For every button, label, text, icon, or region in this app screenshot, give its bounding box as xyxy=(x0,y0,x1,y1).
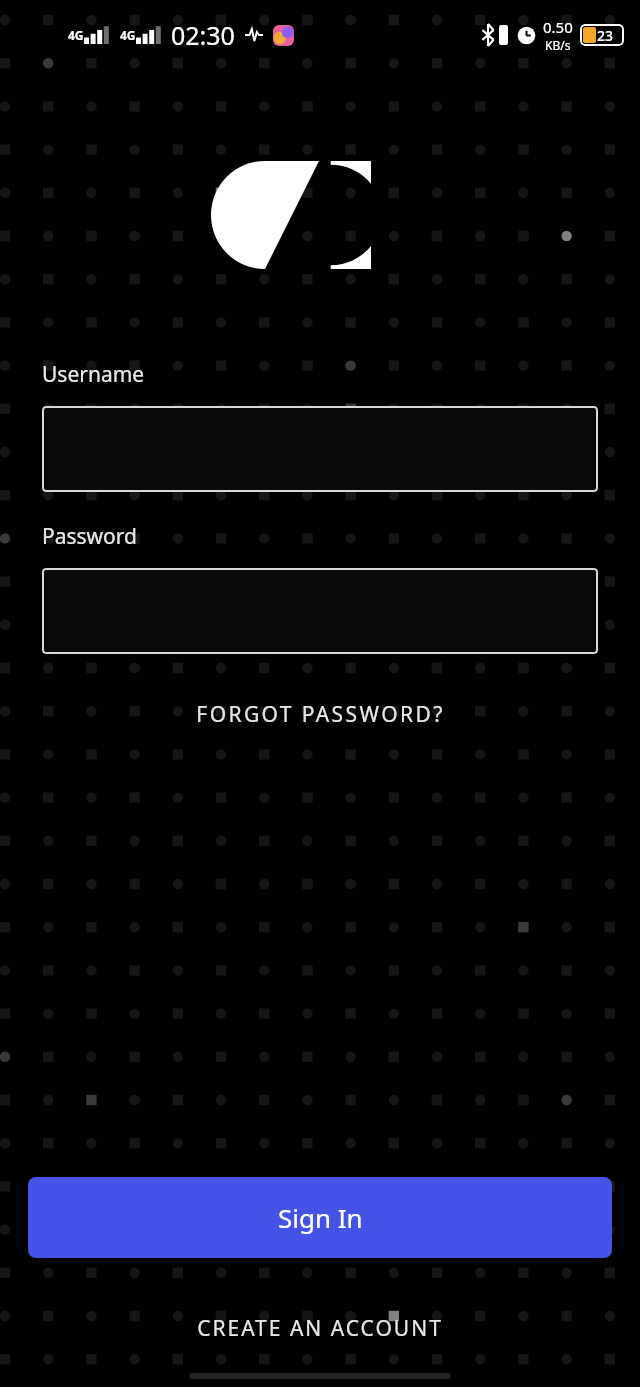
staticText: KB/s xyxy=(545,37,571,53)
staticText: 0.50 xyxy=(543,17,573,37)
staticText: 23 xyxy=(597,26,614,45)
staticText: 4G xyxy=(120,27,136,43)
staticText: 02:30 xyxy=(171,18,235,52)
button[interactable] xyxy=(42,568,598,654)
staticText: Sign In xyxy=(278,1200,363,1235)
staticText: 4G xyxy=(68,27,84,43)
staticText: Password xyxy=(42,522,137,551)
staticText: CREATE AN ACCOUNT xyxy=(197,1314,443,1343)
button[interactable]: CREATE AN ACCOUNT xyxy=(0,1314,640,1343)
staticText: Username xyxy=(42,360,145,389)
staticText: FORGOT PASSWORD? xyxy=(196,700,445,729)
button[interactable]: Sign In xyxy=(28,1177,612,1258)
button[interactable]: FORGOT PASSWORD? xyxy=(0,700,640,729)
button[interactable] xyxy=(42,406,598,492)
